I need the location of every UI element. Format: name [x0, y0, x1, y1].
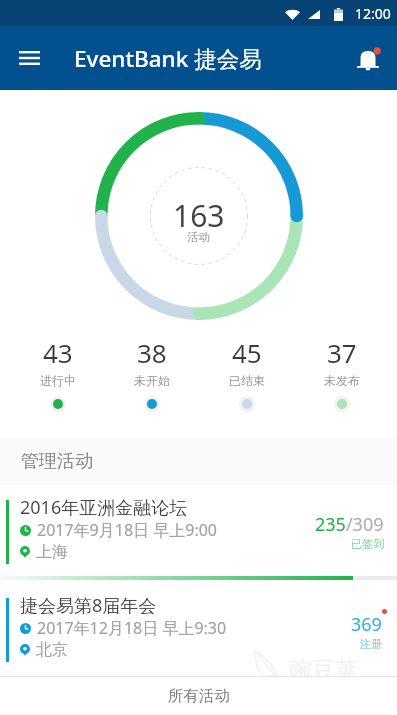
staticText: 上海: [36, 542, 68, 562]
staticText: 管理活动: [21, 450, 93, 473]
staticText: 2017年9月18日 早上9:00: [37, 519, 217, 541]
staticText: 已结束: [229, 373, 265, 388]
staticText: 12:00: [355, 4, 391, 23]
staticText: 已签到: [351, 537, 384, 551]
staticText: 北京: [36, 640, 68, 660]
staticText: 369: [351, 612, 382, 637]
staticText: 2017年12月18日 早上9:30: [37, 617, 227, 639]
button[interactable]: 37: [294, 335, 389, 412]
button[interactable]: 38: [105, 335, 199, 412]
staticText: 2016年亚洲金融论坛: [20, 495, 188, 520]
staticText: 43: [43, 335, 73, 370]
button[interactable]: Notifications: [356, 45, 382, 73]
button[interactable]: 2016年亚洲金融论坛: [0, 485, 397, 576]
staticText: 未开始: [134, 373, 170, 388]
staticText: 活动: [187, 230, 210, 244]
button[interactable]: 所有活动: [0, 677, 397, 715]
staticText: 未发布: [324, 373, 360, 388]
button[interactable]: Menu: [8, 37, 50, 79]
staticText: 235/309: [315, 512, 384, 537]
staticText: 38: [137, 335, 167, 370]
staticText: 所有活动: [168, 686, 230, 706]
staticText: 进行中: [40, 373, 76, 388]
button[interactable]: 45: [199, 335, 294, 412]
button[interactable]: 43: [11, 335, 105, 412]
staticText: 163: [173, 195, 225, 236]
staticText: 45: [232, 335, 262, 370]
staticText: EventBank 捷会易: [74, 43, 262, 74]
staticText: 捷会易第8届年会: [20, 593, 157, 618]
button[interactable]: 捷会易第8届年会: [0, 583, 397, 674]
staticText: 注册: [360, 637, 382, 651]
staticText: 37: [327, 335, 357, 370]
staticText: 豌豆荚: [289, 656, 358, 685]
